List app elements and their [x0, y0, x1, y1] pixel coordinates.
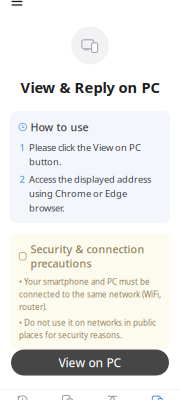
staticText: View on PC: [58, 355, 121, 370]
button[interactable]: View on PC: [11, 349, 169, 375]
button[interactable]: History: [0, 394, 45, 400]
staticText: • Do not use it on networks in public pl…: [19, 317, 156, 340]
button[interactable]: Menu: [4, 0, 30, 13]
staticText: View & Reply on PC: [20, 77, 159, 97]
staticText: Please click the View on PC button.: [29, 141, 141, 168]
staticText: How to use: [30, 120, 88, 134]
staticText: 2: [19, 173, 24, 185]
button[interactable]: PC Sync: [135, 394, 180, 400]
button[interactable]: Filters: [90, 394, 135, 400]
staticText: 1: [19, 141, 24, 153]
staticText: Security & connection precautions: [30, 242, 144, 270]
button[interactable]: Push: [45, 394, 90, 400]
staticText: Access the displayed address using Chrom…: [29, 173, 151, 214]
staticText: • Your smartphone and PC must be connect…: [19, 276, 161, 312]
